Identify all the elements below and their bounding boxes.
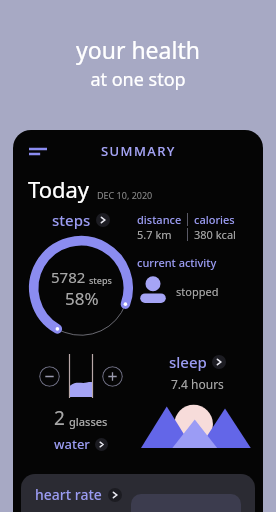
button[interactable]: Remove glass (39, 366, 60, 387)
staticText: distance (137, 212, 187, 227)
staticText: SUMMARY (101, 142, 176, 160)
button[interactable]: Open details (95, 438, 108, 451)
staticText: 2 (54, 405, 65, 431)
staticText: Today (28, 174, 90, 204)
button[interactable]: Open details (108, 488, 122, 502)
staticText: DEC 10, 2020 (97, 189, 153, 201)
staticText: glasses (69, 414, 108, 429)
staticText: 380 kcal (194, 227, 236, 242)
staticText: sleep (169, 352, 207, 372)
staticText: calories (194, 212, 235, 227)
button[interactable]: heart rate (21, 474, 255, 512)
staticText: steps (52, 210, 91, 230)
button[interactable]: Open details (96, 213, 110, 227)
staticText: stopped (176, 284, 219, 299)
staticText: your health (76, 34, 200, 65)
staticText: 5782 (51, 267, 86, 287)
staticText: steps (89, 274, 112, 286)
button[interactable]: Menu (25, 138, 51, 164)
button[interactable]: Add glass (102, 366, 123, 387)
staticText: water (54, 435, 90, 453)
staticText: heart rate (35, 485, 102, 504)
staticText: at one stop (90, 67, 186, 92)
staticText: 5.7 km (137, 227, 187, 242)
staticText: 58% (65, 287, 99, 310)
staticText: current activity (137, 255, 217, 270)
staticText: 7.4 hours (171, 376, 224, 392)
button[interactable]: Open details (212, 355, 226, 369)
